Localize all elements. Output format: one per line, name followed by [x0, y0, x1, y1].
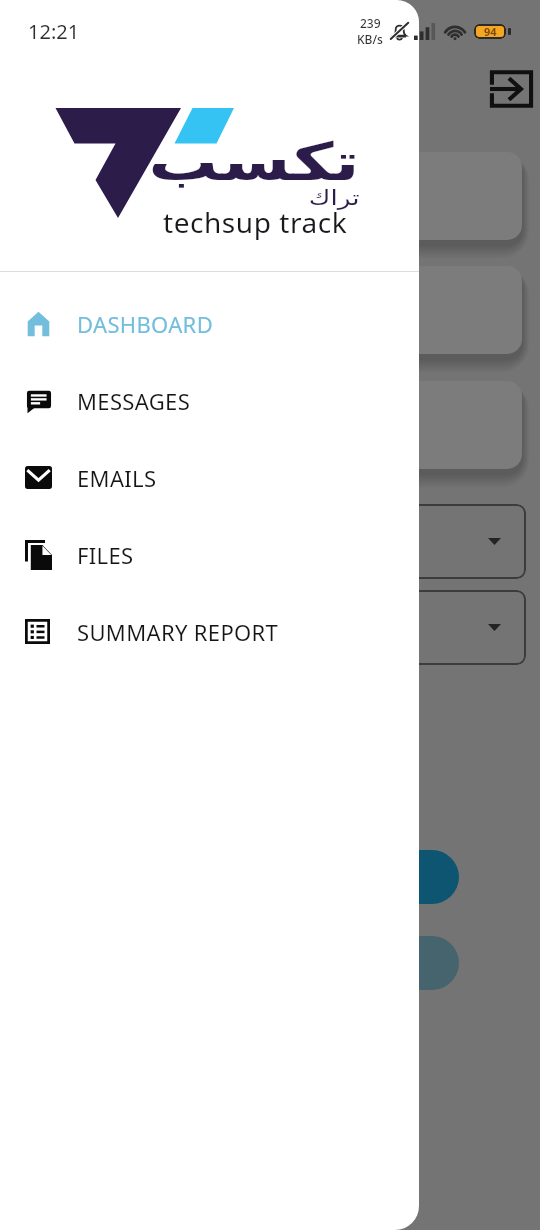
button[interactable] — [140, 504, 526, 579]
button[interactable] — [140, 590, 526, 665]
staticText: 239 — [360, 15, 381, 31]
button[interactable] — [140, 152, 522, 240]
staticText: EMAILS — [77, 463, 157, 493]
button[interactable] — [160, 936, 459, 990]
staticText: MESSAGES — [77, 386, 191, 416]
staticText: 94 — [484, 24, 497, 39]
staticText: تكسب — [148, 132, 360, 193]
button[interactable] — [140, 266, 522, 354]
staticText: 12:21 — [28, 18, 80, 45]
staticText: DASHBOARD — [77, 309, 214, 339]
staticText: FILES — [77, 540, 134, 570]
button[interactable]: Logout — [482, 60, 540, 118]
button[interactable]: SUMMARY REPORT — [0, 593, 419, 670]
button[interactable]: تكسب — [0, 0, 419, 1230]
button[interactable]: MESSAGES — [0, 362, 419, 439]
staticText: تراك — [309, 186, 360, 210]
button[interactable]: DASHBOARD — [0, 285, 419, 362]
button[interactable] — [160, 850, 459, 904]
button[interactable] — [140, 381, 522, 469]
button[interactable]: EMAILS — [0, 439, 419, 516]
staticText: techsup track — [163, 203, 348, 241]
button[interactable]: FILES — [0, 516, 419, 593]
staticText: SUMMARY REPORT — [77, 617, 279, 647]
staticText: KB/s — [357, 31, 383, 47]
